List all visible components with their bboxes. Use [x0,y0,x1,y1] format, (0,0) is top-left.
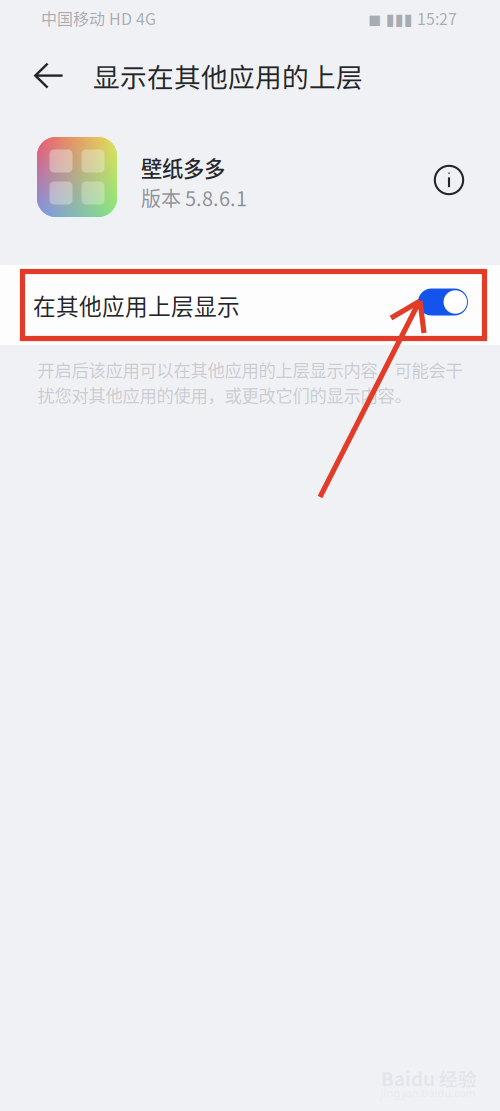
button[interactable]: 应用信息 [425,153,473,201]
staticText: 中国移动 HD 4G [41,6,156,30]
staticText: 在其他应用上层显示 [33,289,240,321]
staticText: 显示在其他应用的上层 [93,56,363,95]
button[interactable]: 在其他应用上层显示 [0,265,500,345]
staticText: 版本 5.8.6.1 [141,183,247,212]
staticText: 壁纸多多 [141,152,225,183]
button[interactable]: 返回 [23,49,75,101]
staticText: 开启后该应用可以在其他应用的上层显示内容，可能会干扰您对其他应用的使用，或更改它… [37,357,462,407]
staticText: ◼ ▮▮▮ 15:27 [368,6,457,30]
staticText: Baidu 经验 [381,1064,477,1091]
